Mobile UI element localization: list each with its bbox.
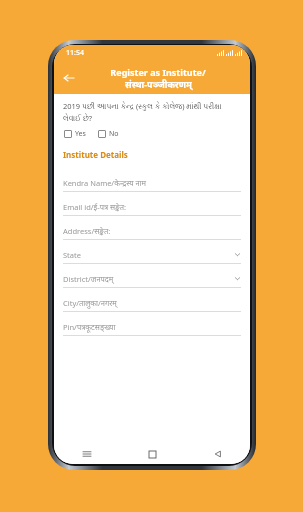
staticText: Yes (75, 129, 86, 139)
button[interactable]: Yes (63, 128, 87, 140)
staticText: 11:54 (66, 48, 84, 58)
button[interactable]: Recent apps (54, 444, 120, 464)
button[interactable]: Address/सङ्केत: (63, 216, 241, 240)
staticText: Kendra Name/केन्द्रस्य नाम (63, 178, 147, 188)
staticText: Institute Details (63, 149, 128, 160)
button[interactable]: No (97, 128, 120, 140)
staticText: State (63, 250, 81, 260)
button[interactable]: Email id/ई-पत्र सङ्केत: (63, 192, 241, 216)
button[interactable]: City/तालुका/नगरम् (63, 288, 241, 312)
staticText: Email id/ई-पत्र सङ्केत: (63, 202, 127, 212)
staticText: Register as Institute/ (110, 66, 206, 78)
staticText: No (109, 129, 119, 139)
button[interactable]: Back (58, 67, 80, 89)
button[interactable]: Home (120, 444, 185, 464)
staticText: संस्था-पञ्जीकरणम् (125, 78, 192, 90)
button[interactable]: District/जनपदम् (63, 264, 241, 288)
button[interactable]: Pin/पत्रकूटसङ्ख्या (63, 312, 241, 336)
staticText: Pin/पत्रकूटसङ्ख्या (63, 322, 116, 332)
button[interactable]: Back (185, 444, 250, 464)
staticText: District/जनपदम् (63, 274, 114, 284)
button[interactable]: State (63, 240, 241, 264)
staticText: 2019 પછી આપના કેન્દ્ર (સ્કુલ કે કોલેજ) મ… (63, 101, 241, 123)
staticText: City/तालुका/नगरम् (63, 298, 117, 308)
button[interactable]: Kendra Name/केन्द्रस्य नाम (63, 168, 241, 192)
staticText: Address/सङ्केत: (63, 226, 111, 236)
